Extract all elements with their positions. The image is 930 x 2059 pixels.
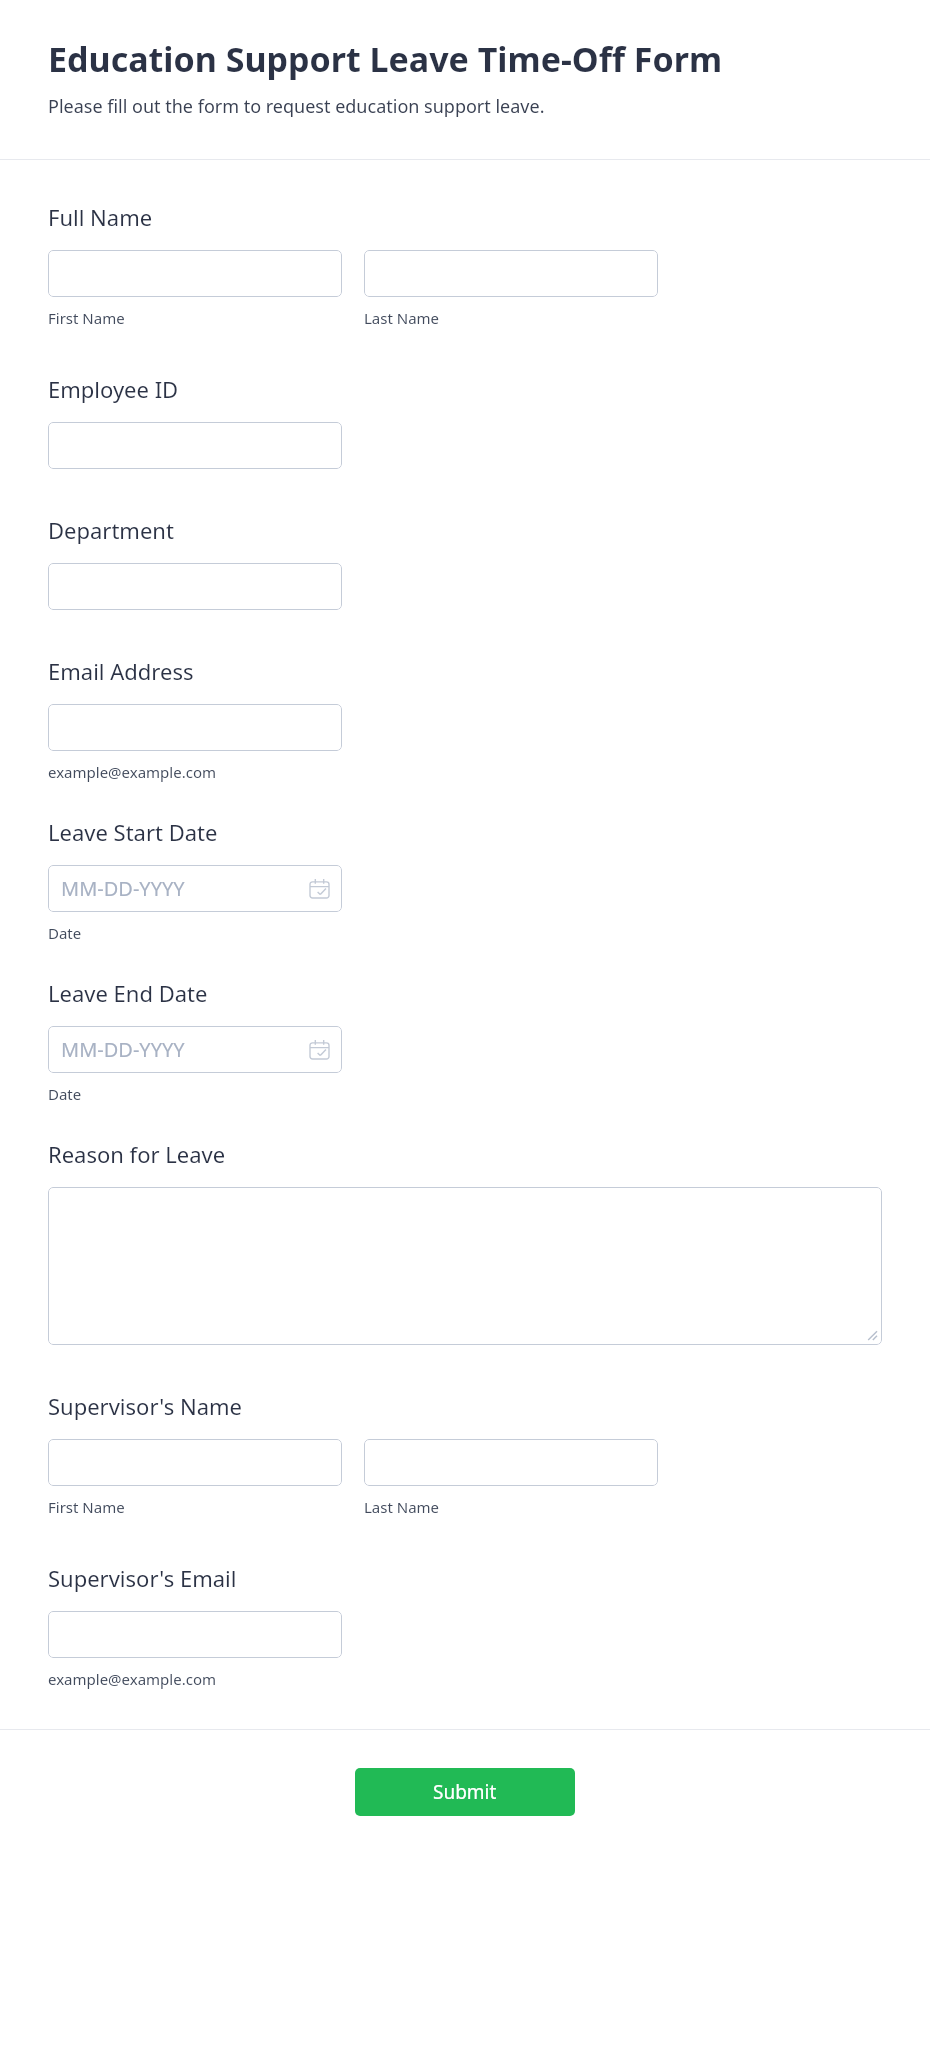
staticText: Supervisor's Email (48, 1563, 237, 1593)
staticText: Please fill out the form to request educ… (48, 94, 545, 119)
staticText: MM-DD-YYYY (61, 1036, 185, 1063)
staticText: Education Support Leave Time-Off Form (48, 36, 723, 82)
button[interactable]: Submit (355, 1768, 575, 1816)
staticText: example@example.com (48, 762, 216, 782)
staticText: First Name (48, 308, 125, 328)
staticText: Email Address (48, 656, 194, 686)
staticText: Leave Start Date (48, 817, 218, 847)
button[interactable]: Supervisor's Email (48, 1611, 342, 1658)
staticText: First Name (48, 1497, 125, 1517)
staticText: Supervisor's Name (48, 1391, 242, 1421)
button[interactable]: Leave End Date (48, 1026, 342, 1073)
staticText: Full Name (48, 202, 153, 232)
staticText: Employee ID (48, 374, 179, 404)
button[interactable]: Supervisor Last Name (364, 1439, 658, 1486)
button[interactable]: Last Name (364, 250, 658, 297)
staticText: Last Name (364, 308, 440, 328)
staticText: MM-DD-YYYY (61, 875, 185, 902)
button[interactable]: Reason for Leave (48, 1187, 882, 1345)
staticText: Department (48, 515, 174, 545)
staticText: Date (48, 1084, 82, 1104)
staticText: Reason for Leave (48, 1139, 226, 1169)
staticText: example@example.com (48, 1669, 216, 1689)
button[interactable]: Employee ID (48, 422, 342, 469)
button[interactable]: Supervisor First Name (48, 1439, 342, 1486)
button[interactable]: First Name (48, 250, 342, 297)
button[interactable]: Email Address (48, 704, 342, 751)
button[interactable]: Leave Start Date (48, 865, 342, 912)
staticText: Submit (433, 1779, 497, 1805)
staticText: Leave End Date (48, 978, 208, 1008)
button[interactable]: Department (48, 563, 342, 610)
staticText: Last Name (364, 1497, 440, 1517)
staticText: Date (48, 923, 82, 943)
